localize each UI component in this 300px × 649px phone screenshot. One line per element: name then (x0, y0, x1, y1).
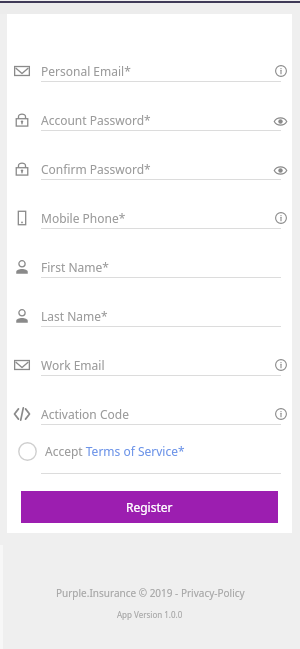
other: Info (275, 212, 287, 224)
staticText: Register (126, 499, 173, 515)
button[interactable]: First Name* (7, 235, 292, 284)
button[interactable]: Work Email (7, 333, 292, 382)
other: Show password (274, 115, 287, 128)
staticText: Accept Terms of Service* (45, 443, 185, 459)
staticText: App Version 1.0.0 (117, 609, 183, 620)
staticText: First Name* (41, 259, 109, 275)
button[interactable]: Accept Terms of Service* (7, 431, 292, 471)
staticText: Mobile Phone* (41, 210, 126, 226)
button[interactable]: Personal Email* (7, 39, 292, 88)
staticText: Activation Code (41, 406, 129, 422)
button[interactable]: Confirm Password* (7, 137, 292, 186)
staticText: Personal Email* (41, 63, 131, 79)
staticText: Purple.Insurance © 2019 - Privacy-Policy (56, 586, 245, 600)
button[interactable]: Register (21, 491, 278, 523)
other: Info (275, 359, 287, 371)
button[interactable]: Mobile Phone* (7, 186, 292, 235)
button[interactable]: Account Password* (7, 88, 292, 137)
other: Show password (274, 164, 287, 177)
button[interactable]: Activation Code (7, 382, 292, 431)
staticText: Work Email (41, 357, 105, 373)
staticText: Last Name* (41, 308, 108, 324)
staticText: Confirm Password* (41, 161, 151, 177)
staticText: Account Password* (41, 112, 151, 128)
other: Info (275, 408, 287, 420)
other: Info (275, 65, 287, 77)
button[interactable]: Last Name* (7, 284, 292, 333)
